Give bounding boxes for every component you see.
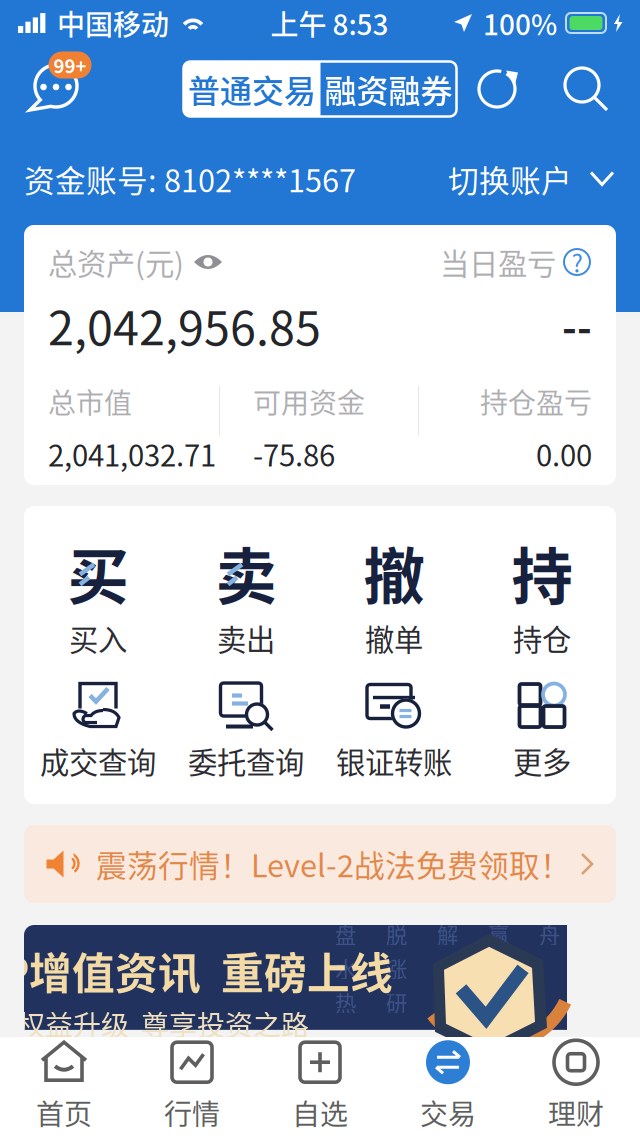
button[interactable]: 委托查询 xyxy=(172,679,320,782)
staticText: 持仓盈亏 xyxy=(480,381,592,421)
staticText: 卖 xyxy=(215,528,276,617)
staticText: 水 xyxy=(335,952,356,983)
staticText: 委托查询 xyxy=(188,739,304,782)
staticText: 专属权益升级 尊享投资之路 xyxy=(0,1004,309,1044)
staticText: 理财 xyxy=(548,1092,604,1133)
staticText: 震荡行情！Level-2战法免费领取！ xyxy=(96,842,571,886)
staticText: 自选 xyxy=(292,1092,348,1133)
button[interactable]: 银证转账 xyxy=(320,679,468,782)
staticText: 买 xyxy=(67,528,128,617)
staticText: 挖 xyxy=(488,986,509,1017)
button[interactable]: 震荡行情！Level-2战法免费领取！ xyxy=(24,825,616,903)
staticText: 脱 xyxy=(386,918,407,949)
staticText: 坊 xyxy=(437,986,458,1017)
button[interactable]: 成交查询 xyxy=(24,679,172,782)
staticText: VIP增值资讯 重磅上线 xyxy=(0,940,393,1002)
staticText: 行情 xyxy=(164,1092,220,1133)
staticText: 舟 xyxy=(539,918,560,949)
staticText: -- xyxy=(562,296,592,354)
button[interactable]: 更多 xyxy=(468,679,616,782)
staticText: 持 xyxy=(511,528,572,617)
staticText: 资金账号: 8102****1567 xyxy=(24,157,356,201)
staticText: 普通交易 xyxy=(188,66,316,112)
staticText: 上午 8:53 xyxy=(270,3,388,43)
staticText: 切换账户 xyxy=(448,157,572,201)
button[interactable]: 自选 xyxy=(256,1037,384,1136)
button[interactable]: 行情 xyxy=(128,1037,256,1136)
button[interactable]: 持 xyxy=(468,528,616,659)
staticText: 99+ xyxy=(53,51,86,78)
button[interactable]: 首页 xyxy=(0,1037,128,1136)
button[interactable]: 撤 xyxy=(320,528,468,659)
staticText: 首页 xyxy=(36,1092,92,1133)
staticText: 成交查询 xyxy=(40,739,156,782)
button[interactable]: 普通交易 xyxy=(183,61,320,116)
staticText: 更多 xyxy=(513,739,571,782)
staticText: 银证转账 xyxy=(336,739,452,782)
staticText: 融资融券 xyxy=(324,66,452,112)
staticText: 交易 xyxy=(420,1092,476,1133)
staticText: 中国移动 xyxy=(57,3,169,43)
button[interactable]: 切换账户 xyxy=(448,145,614,213)
staticText: -75.86 xyxy=(253,432,335,475)
button[interactable]: Help xyxy=(560,247,594,277)
button[interactable]: 理财 xyxy=(512,1037,640,1136)
staticText: 总资产(元) xyxy=(48,241,184,283)
staticText: 总市值 xyxy=(48,381,132,421)
staticText: 盘 xyxy=(335,918,356,949)
staticText: ? xyxy=(571,245,582,279)
staticText: 0.00 xyxy=(536,432,592,475)
button[interactable]: 盘 xyxy=(24,925,616,1037)
button[interactable]: 融资融券 xyxy=(320,61,456,116)
staticText: 密 xyxy=(437,952,458,983)
button[interactable]: Search xyxy=(555,58,617,120)
staticText: 研 xyxy=(386,986,407,1017)
staticText: 买入 xyxy=(69,617,127,659)
button[interactable]: Refresh xyxy=(467,58,529,120)
staticText: 可用资金 xyxy=(253,381,365,421)
staticText: 撤 xyxy=(363,528,424,617)
staticText: 解 xyxy=(437,918,458,949)
staticText: 赢 xyxy=(488,918,509,949)
staticText: 2,042,956.85 xyxy=(48,291,321,359)
staticText: 卖出 xyxy=(217,617,275,659)
staticText: 涨 xyxy=(386,952,407,983)
button[interactable]: Hide balance xyxy=(188,248,228,276)
staticText: 当日盈亏 xyxy=(440,241,556,283)
button[interactable]: 买 xyxy=(24,528,172,659)
staticText: 热 xyxy=(335,986,356,1017)
staticText: 撤单 xyxy=(365,617,423,659)
staticText: 100% xyxy=(483,3,557,43)
staticText: 2,041,032.71 xyxy=(48,432,216,475)
button[interactable]: 卖 xyxy=(172,528,320,659)
button[interactable]: Messages xyxy=(17,57,93,121)
button[interactable]: 交易 xyxy=(384,1037,512,1136)
staticText: 持仓 xyxy=(513,617,571,659)
